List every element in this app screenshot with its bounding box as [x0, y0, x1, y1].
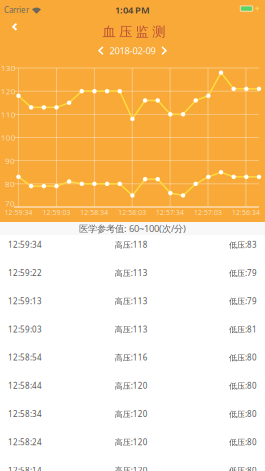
staticText: 低压:83: [229, 239, 257, 250]
staticText: 血压监测: [102, 24, 165, 40]
staticText: 120: [1, 86, 16, 96]
button[interactable]: 后一天: [161, 46, 167, 56]
staticText: 12:58:44: [8, 380, 42, 391]
button[interactable]: 12:58:44: [0, 372, 265, 400]
button[interactable]: 12:58:24: [0, 428, 265, 456]
staticText: 高压:120: [115, 465, 148, 471]
staticText: +: [255, 3, 260, 14]
staticText: 高压:113: [115, 268, 148, 278]
staticText: 12:59:34: [8, 239, 42, 250]
button[interactable]: 12:59:03: [0, 315, 265, 343]
staticText: 90: [5, 155, 15, 166]
staticText: 2018-02-09: [109, 44, 155, 57]
staticText: Carrier: [4, 5, 29, 15]
staticText: 低压:80: [229, 437, 257, 447]
staticText: 12:58:54: [8, 352, 42, 363]
staticText: 低压:80: [229, 465, 257, 471]
staticText: 低压:79: [229, 268, 257, 278]
staticText: 12:57:34: [156, 208, 184, 217]
staticText: 低压:80: [229, 409, 257, 419]
staticText: 医学参考值: 60~100(次/分): [79, 222, 186, 235]
button[interactable]: 12:59:34: [0, 231, 265, 259]
button[interactable]: 12:58:14: [0, 456, 265, 471]
staticText: 低压:80: [229, 352, 257, 363]
staticText: 12:58:14: [8, 465, 42, 471]
staticText: 12:57:03: [194, 208, 222, 217]
staticText: 12:58:34: [8, 409, 42, 419]
staticText: 高压:120: [115, 437, 148, 447]
staticText: 低压:81: [229, 324, 257, 335]
staticText: 12:59:13: [8, 296, 42, 306]
staticText: 低压:79: [229, 296, 257, 306]
staticText: 130: [1, 63, 16, 73]
staticText: 12:59:34: [4, 208, 32, 217]
button[interactable]: 12:59:22: [0, 259, 265, 287]
button[interactable]: 12:58:54: [0, 343, 265, 372]
staticText: 高压:113: [115, 324, 148, 335]
staticText: 低压:80: [229, 380, 257, 391]
staticText: 1:04 PM: [115, 4, 150, 16]
staticText: 100: [1, 132, 16, 143]
button[interactable]: 12:58:34: [0, 400, 265, 428]
staticText: 12:58:03: [118, 208, 146, 217]
staticText: 高压:113: [115, 296, 148, 306]
button[interactable]: 前一天: [98, 46, 104, 56]
button[interactable]: 12:59:13: [0, 287, 265, 315]
staticText: 12:56:34: [232, 208, 260, 217]
staticText: 高压:120: [115, 409, 148, 419]
staticText: 高压:120: [115, 380, 148, 391]
staticText: 12:59:03: [42, 208, 70, 217]
staticText: 110: [1, 109, 16, 120]
button[interactable]: Back: [8, 20, 22, 34]
staticText: 高压:118: [115, 239, 148, 250]
staticText: 12:59:03: [8, 324, 42, 335]
staticText: 高压:116: [115, 352, 148, 363]
staticText: 12:59:22: [8, 268, 42, 278]
staticText: 70: [5, 198, 15, 209]
staticText: 12:58:24: [8, 437, 42, 447]
staticText: 12:58:34: [80, 208, 108, 217]
staticText: 80: [5, 178, 15, 189]
